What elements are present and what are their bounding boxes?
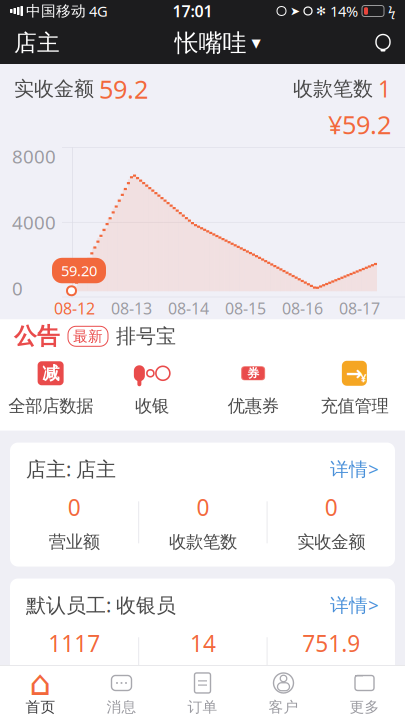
button[interactable]: 通知 bbox=[361, 22, 405, 64]
staticText: 08-13 bbox=[111, 298, 152, 319]
staticText: 客户 bbox=[268, 698, 298, 716]
button[interactable]: 券 bbox=[202, 353, 304, 423]
staticText: ϟ bbox=[388, 2, 395, 20]
staticText: 减 bbox=[42, 363, 59, 384]
staticText: ¥59.2 bbox=[328, 108, 391, 141]
staticText: 08-12 bbox=[54, 298, 95, 319]
button[interactable]: 公告 bbox=[0, 319, 405, 353]
staticText: 14% bbox=[330, 1, 358, 21]
button[interactable]: 减 bbox=[0, 353, 101, 423]
staticText: 店主 bbox=[14, 29, 60, 57]
button[interactable]: 消息 bbox=[81, 666, 162, 720]
staticText: ✻ bbox=[316, 4, 326, 18]
staticText: 751.9 bbox=[302, 628, 360, 658]
staticText: 订单 bbox=[187, 698, 217, 716]
staticText: 详情> bbox=[330, 456, 379, 481]
staticText: 14 bbox=[190, 628, 216, 658]
staticText: ¥ bbox=[360, 371, 366, 385]
button[interactable]: 更多 bbox=[324, 666, 405, 720]
staticText: 店主: 店主 bbox=[26, 456, 116, 482]
staticText: 08-17 bbox=[339, 298, 380, 319]
staticText: 0 bbox=[196, 492, 209, 522]
staticText: 17:01 bbox=[172, 0, 212, 22]
staticText: 公告 bbox=[14, 322, 60, 350]
button[interactable]: 客户 bbox=[243, 666, 324, 720]
staticText: 消息 bbox=[106, 698, 136, 716]
staticText: ➤ bbox=[290, 4, 300, 18]
staticText: 中国移动 bbox=[26, 2, 86, 20]
staticText: 08-14 bbox=[168, 298, 209, 319]
staticText: 优惠券 bbox=[228, 395, 279, 417]
staticText: 充值管理 bbox=[320, 395, 388, 417]
button[interactable]: 默认员工: 收银员 bbox=[0, 578, 405, 702]
staticText: 实收金额 bbox=[297, 531, 365, 552]
button[interactable]: 店主 bbox=[0, 22, 74, 64]
button[interactable]: 订单 bbox=[162, 666, 243, 720]
staticText: 券 bbox=[247, 366, 259, 381]
staticText: → bbox=[346, 362, 363, 385]
staticText: 1117 bbox=[48, 628, 100, 658]
staticText: 收款笔数 bbox=[293, 76, 373, 101]
button[interactable]: 怅嘴哇 bbox=[166, 22, 268, 64]
staticText: 收款笔数 bbox=[169, 667, 237, 688]
staticText: 默认员工: 收银员 bbox=[26, 591, 176, 618]
staticText: 更多 bbox=[349, 698, 379, 716]
staticText: 营业额 bbox=[49, 531, 100, 552]
staticText: 59.2 bbox=[99, 72, 148, 106]
staticText: 1 bbox=[378, 74, 391, 104]
staticText: 实收金额 bbox=[14, 76, 94, 101]
staticText: 4000 bbox=[12, 210, 56, 235]
staticText: 8000 bbox=[12, 144, 56, 169]
staticText: ▼ bbox=[251, 36, 260, 50]
staticText: 0 bbox=[68, 492, 81, 522]
button[interactable]: ⌂ bbox=[0, 666, 81, 720]
staticText: 4G bbox=[89, 1, 108, 21]
staticText: 详情> bbox=[330, 592, 379, 617]
staticText: 怅嘴哇 bbox=[174, 28, 246, 58]
staticText: 08-16 bbox=[282, 298, 323, 319]
staticText: 59.20 bbox=[61, 261, 97, 280]
staticText: 收款笔数 bbox=[169, 531, 237, 552]
button[interactable]: 收银 bbox=[101, 353, 202, 423]
staticText: 0 bbox=[325, 492, 338, 522]
staticText: ⌂ bbox=[29, 663, 51, 703]
staticText: 实收金额 bbox=[297, 667, 365, 688]
staticText: 首页 bbox=[25, 698, 55, 716]
staticText: 收银 bbox=[135, 395, 169, 417]
staticText: 08-15 bbox=[225, 298, 266, 319]
staticText: 最新 bbox=[73, 327, 103, 345]
button[interactable]: 店主: 店主 bbox=[0, 443, 405, 567]
staticText: 排号宝 bbox=[116, 324, 176, 349]
button[interactable]: → bbox=[304, 353, 405, 423]
staticText: 0 bbox=[12, 276, 23, 301]
staticText: 全部店数据 bbox=[8, 395, 93, 417]
